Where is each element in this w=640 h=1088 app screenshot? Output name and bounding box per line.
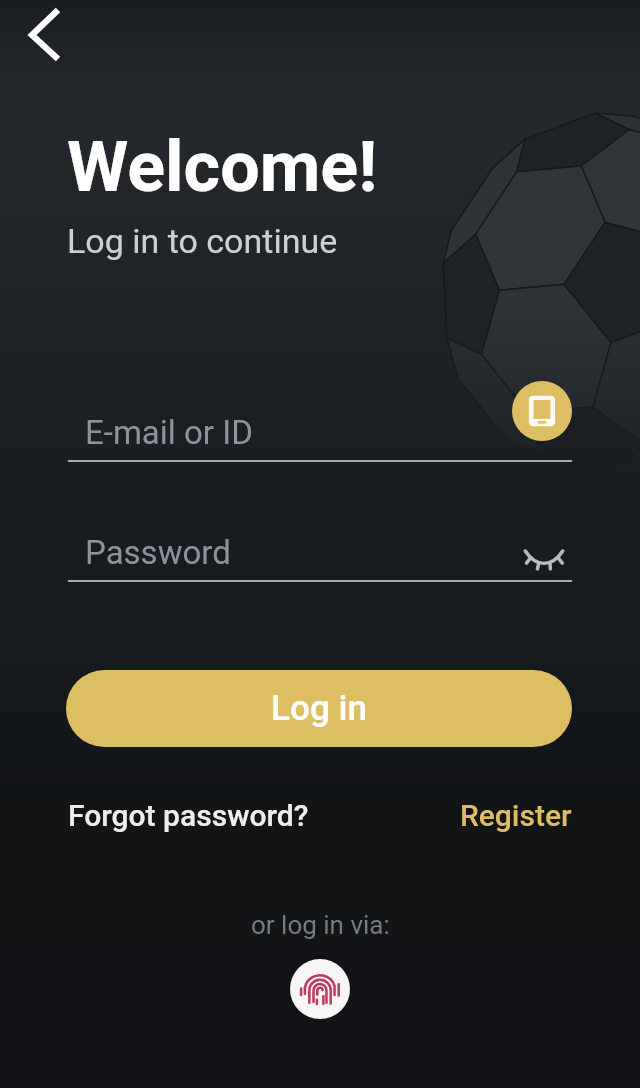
button[interactable]: Log in — [66, 670, 572, 747]
staticText: Password — [85, 533, 231, 572]
staticText: Welcome! — [67, 126, 378, 208]
staticText: Forgot password? — [68, 798, 309, 833]
button[interactable]: Show password — [516, 525, 572, 581]
button[interactable]: Password — [68, 524, 572, 582]
staticText: or log in via: — [251, 910, 390, 940]
button[interactable]: Back — [16, 0, 74, 58]
staticText: Register — [460, 798, 572, 833]
button[interactable]: E-mail or ID — [68, 404, 572, 462]
button[interactable]: Register — [460, 794, 572, 837]
button[interactable]: Log in with fingerprint — [290, 959, 350, 1019]
staticText: Log in — [271, 688, 367, 729]
staticText: Log in to continue — [67, 221, 338, 261]
button[interactable]: Forgot password? — [68, 794, 309, 837]
button[interactable]: Log in with phone — [512, 381, 572, 441]
staticText: E-mail or ID — [85, 413, 253, 452]
